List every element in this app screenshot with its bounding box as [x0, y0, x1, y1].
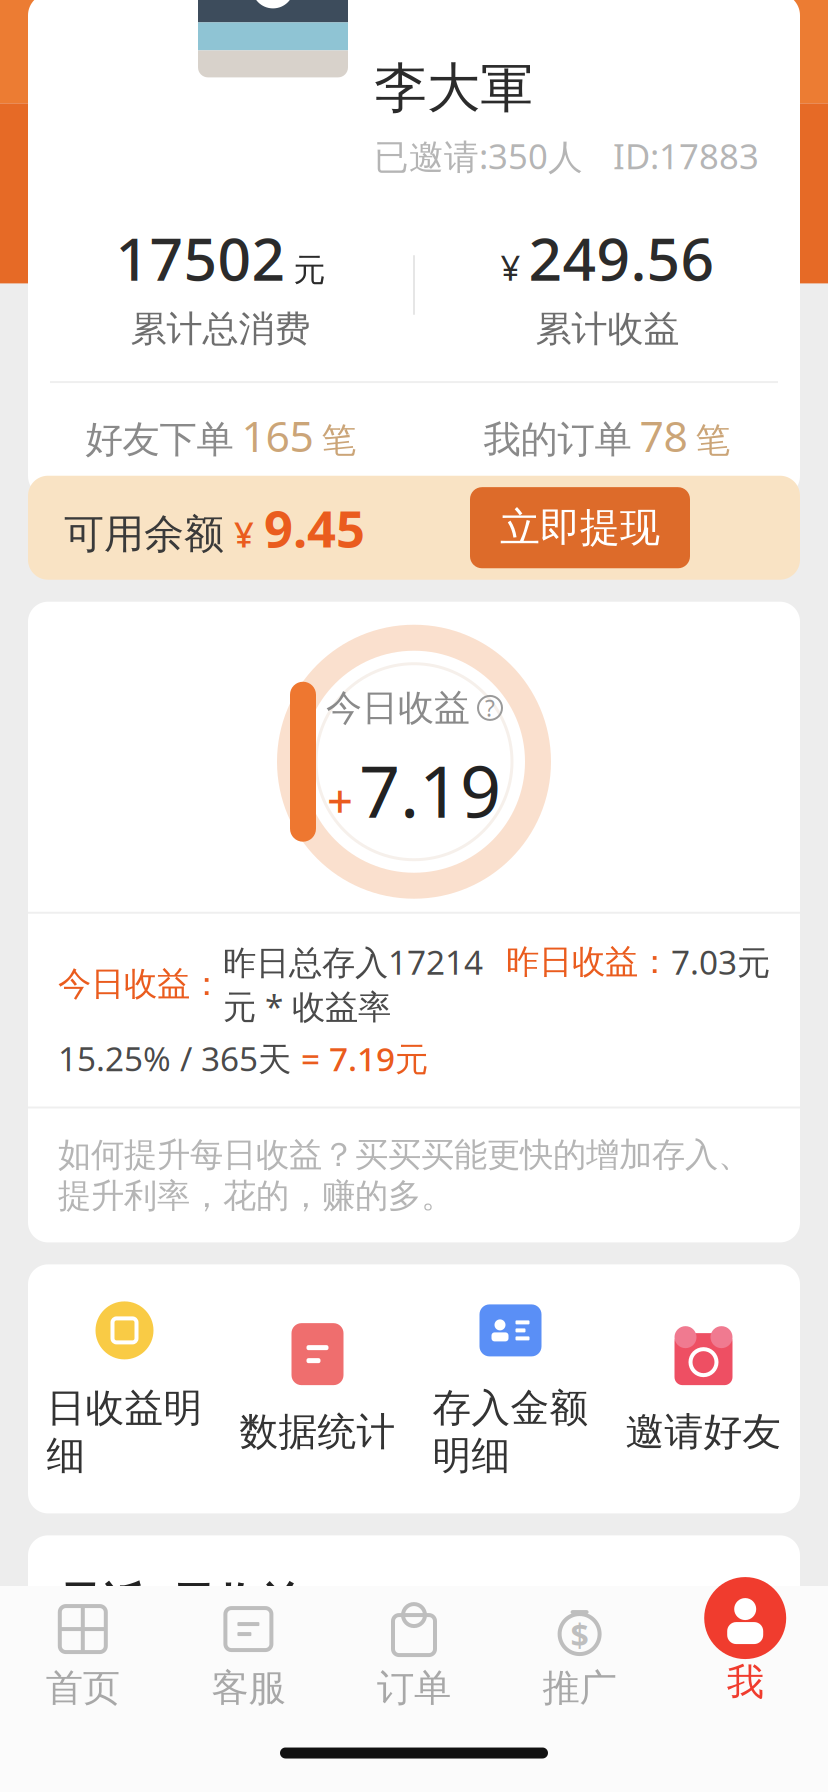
staticText: 订单 [377, 1665, 451, 1711]
staticText: = 7.19元 [301, 1036, 428, 1081]
staticText: 推广 [543, 1665, 617, 1711]
staticText: 可用余额 [64, 509, 224, 559]
staticText: 7.19 [359, 742, 501, 838]
button[interactable]: 数据统计 [221, 1322, 414, 1456]
button[interactable]: 订单 [331, 1589, 497, 1725]
button[interactable]: 我 [662, 1595, 828, 1719]
staticText: 立即提现 [500, 503, 660, 552]
staticText: 昨日收益： [506, 941, 671, 982]
staticText: 已邀请:350人 ID:17883 [374, 133, 759, 179]
staticText: 存入金额明细 [432, 1384, 588, 1479]
staticText: 邀请好友 [625, 1408, 781, 1456]
staticText: ¥ [500, 244, 520, 290]
staticText: 249.56 [528, 219, 714, 297]
staticText: 最近7天收益 [58, 1573, 303, 1632]
staticText: 17502 [115, 219, 285, 297]
staticText: 笔 [695, 419, 730, 462]
button[interactable]: 好友下单 [28, 383, 414, 488]
staticText: 78 [639, 407, 687, 464]
staticText: › [753, 1565, 770, 1640]
staticText: 累计收益 [535, 307, 679, 351]
button[interactable]: 首页 [0, 1589, 166, 1725]
staticText: $ [571, 1614, 589, 1656]
staticText: 李大軍 [374, 55, 533, 121]
staticText: ¥ [234, 511, 254, 557]
staticText: 首页 [46, 1665, 120, 1711]
staticText: 9.45 [264, 494, 365, 561]
staticText: 15.25% / 365天 [58, 1036, 301, 1081]
button[interactable]: 日收益明细 [28, 1298, 221, 1479]
staticText: ? [485, 693, 495, 723]
button[interactable]: 最近7天收益 [28, 1535, 800, 1658]
staticText: 客服 [211, 1665, 285, 1711]
button[interactable]: $ [497, 1589, 662, 1725]
staticText: 7.03元 [671, 940, 770, 984]
staticText: 日收益明细 [46, 1384, 202, 1479]
staticText: 收益 [426, 1670, 504, 1717]
staticText: 165 [241, 407, 313, 464]
staticText: 我 [727, 1659, 764, 1705]
button[interactable]: 我的订单 [414, 383, 800, 488]
staticText: 如何提升每日收益？买买买能更快的增加存入、提升利率，花的，赚的多。 [58, 1134, 751, 1216]
button[interactable]: 存入金额明细 [414, 1298, 607, 1479]
button[interactable]: 邀请好友 [607, 1322, 800, 1456]
staticText: 累计总消费 [130, 307, 310, 351]
staticText: 今日收益： [58, 963, 223, 1004]
button[interactable]: 客服 [166, 1589, 331, 1725]
button[interactable]: 立即提现 [470, 487, 690, 568]
staticText: 昨日总存入17214元 * 收益率 [223, 940, 483, 1028]
staticText: 今日收益 [326, 686, 470, 730]
staticText: 数据统计 [239, 1408, 395, 1456]
staticText: 笔 [321, 419, 356, 462]
staticText: 元 [293, 250, 325, 290]
staticText: 好友下单 [85, 417, 233, 462]
staticText: + [327, 770, 353, 830]
staticText: 我的订单 [483, 417, 631, 462]
